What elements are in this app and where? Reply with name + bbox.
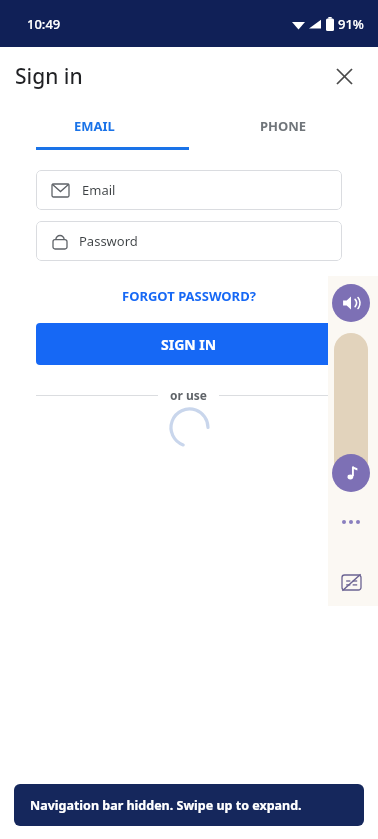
button[interactable]: Volume slider (334, 333, 368, 491)
button[interactable]: Email (36, 170, 342, 210)
button[interactable]: Navigation bar hidden. Swipe up to expan… (14, 784, 364, 826)
button[interactable]: Password (36, 221, 342, 261)
staticText: FORGOT PASSWORD? (122, 287, 256, 305)
staticText: Sign in (15, 62, 83, 91)
staticText: Don't have an account? (108, 787, 271, 806)
button[interactable]: More options (332, 508, 370, 536)
staticText: Navigation bar hidden. Swipe up to expan… (30, 797, 302, 814)
staticText: SIGN IN (161, 335, 217, 354)
staticText: EMAIL (74, 117, 115, 135)
button[interactable]: Don't have an account? (102, 781, 277, 812)
staticText: PHONE (260, 117, 307, 135)
button[interactable]: Media volume (332, 454, 370, 492)
button[interactable]: FORGOT PASSWORD? (114, 283, 264, 309)
button[interactable]: EMAIL (0, 105, 189, 147)
staticText: Password (79, 232, 138, 250)
button[interactable]: SIGN IN (36, 323, 342, 365)
staticText: 10:49 (27, 15, 61, 33)
button[interactable]: PHONE (189, 105, 378, 147)
staticText: 91% (338, 15, 364, 33)
button[interactable]: Close (328, 60, 360, 92)
button[interactable]: Captions off (332, 566, 370, 598)
staticText: Email (82, 181, 116, 199)
button[interactable]: Volume (332, 284, 370, 322)
staticText: or use (170, 387, 207, 403)
